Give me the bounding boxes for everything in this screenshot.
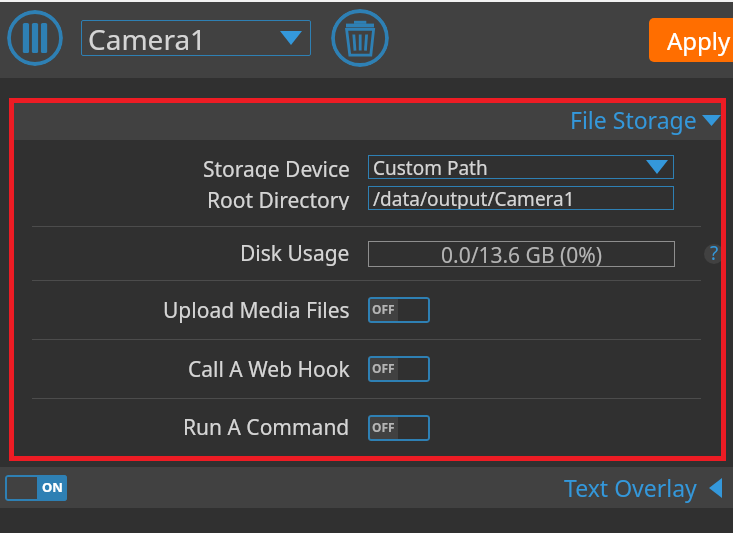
button[interactable]: Call A Web Hook [14, 340, 721, 398]
button[interactable]: Menu [7, 10, 63, 66]
staticText: Custom Path [373, 155, 488, 179]
button[interactable]: Run A Command [14, 399, 721, 456]
button[interactable]: Custom Path [368, 155, 674, 179]
button[interactable]: OFF [368, 297, 430, 323]
button[interactable]: Upload Media Files [14, 281, 721, 339]
button[interactable]: Delete [331, 9, 389, 67]
staticText: Apply [667, 24, 731, 57]
button[interactable]: File Storage [14, 103, 721, 140]
staticText: ON [42, 478, 63, 496]
staticText: Disk Usage [240, 239, 350, 268]
staticText: OFF [372, 301, 395, 317]
staticText: File Storage [570, 104, 697, 135]
staticText: Run A Command [183, 413, 350, 442]
button[interactable]: ON [5, 475, 67, 501]
staticText: OFF [372, 360, 395, 376]
staticText: /data/output/Camera1 [373, 186, 575, 210]
button[interactable]: OFF [368, 415, 430, 441]
staticText: Upload Media Files [163, 296, 350, 325]
button[interactable]: Text Overlay [564, 472, 733, 503]
button[interactable]: Camera1 [81, 20, 311, 56]
staticText: 0.0/13.6 GB (0%) [441, 241, 603, 267]
staticText: Storage Device [203, 155, 350, 179]
button[interactable]: /data/output/Camera1 [368, 186, 674, 210]
staticText: ? [710, 244, 719, 260]
staticText: Root Directory [207, 186, 350, 210]
button[interactable]: Help [704, 244, 724, 264]
button[interactable]: OFF [368, 356, 430, 382]
staticText: OFF [372, 419, 395, 435]
staticText: Camera1 [88, 20, 207, 56]
staticText: Call A Web Hook [188, 355, 350, 384]
button[interactable]: Apply [649, 18, 733, 62]
staticText: Text Overlay [564, 472, 697, 503]
